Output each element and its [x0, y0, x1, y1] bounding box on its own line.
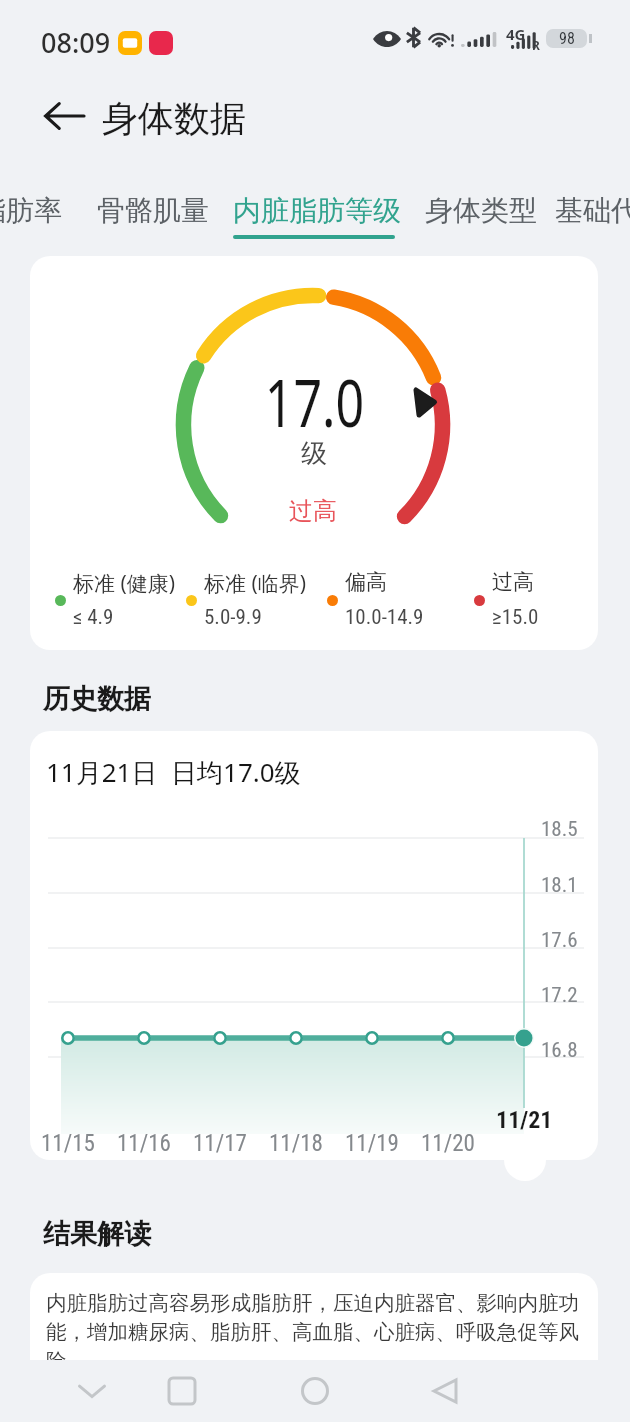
staticText: ≥15.0	[492, 605, 539, 630]
staticText: 5.0-9.9	[204, 605, 262, 630]
button[interactable]: Back	[30, 86, 98, 146]
staticText: 16.8	[541, 1038, 578, 1063]
staticText: 标准 (健康)	[73, 569, 176, 598]
staticText: 18.5	[541, 817, 578, 842]
staticText: 18.1	[541, 873, 578, 898]
staticText: 11/16	[117, 1130, 171, 1157]
staticText: 脂肪率	[0, 193, 62, 228]
staticText: 内脏脂肪等级	[233, 193, 401, 228]
button[interactable]: Hide	[62, 1360, 122, 1422]
staticText: 基础代谢	[555, 193, 630, 228]
staticText: 10.0-14.9	[345, 605, 424, 630]
staticText: 17.0	[265, 356, 364, 446]
staticText: 11/18	[269, 1130, 323, 1157]
staticText: 偏高	[345, 569, 387, 595]
staticText: 标准 (临界)	[204, 569, 307, 598]
staticText: 11/19	[345, 1130, 399, 1157]
staticText: ≤ 4.9	[73, 605, 114, 630]
button[interactable]: 内脏脂肪等级	[221, 186, 389, 242]
button[interactable]: 脂肪率	[0, 186, 50, 242]
staticText: 内脏脂肪过高容易形成脂肪肝，压迫内脏器官、影响内脏功能，增加糖尿病、脂肪肝、高血…	[46, 1290, 580, 1374]
staticText: 08:09	[41, 24, 111, 61]
button[interactable]: 基础代谢	[543, 186, 630, 242]
staticText: 11/21	[496, 1106, 553, 1134]
staticText: 级	[301, 437, 327, 470]
staticText: 结果解读	[43, 1217, 151, 1251]
staticText: 过高	[492, 569, 534, 595]
staticText: 98	[559, 29, 575, 48]
button[interactable]: 骨骼肌量	[85, 186, 197, 242]
staticText: 骨骼肌量	[97, 193, 209, 228]
staticText: 17.6	[541, 928, 578, 953]
staticText: 11/20	[421, 1130, 475, 1157]
button[interactable]: 身体类型	[413, 186, 525, 242]
staticText: R	[532, 37, 540, 53]
staticText: 过高	[289, 496, 337, 526]
button[interactable]: Add record	[504, 1139, 546, 1181]
staticText: 身体数据	[102, 96, 246, 141]
staticText: 4G	[506, 24, 526, 44]
staticText: 17.2	[541, 983, 578, 1008]
staticText: 身体类型	[425, 193, 537, 228]
staticText: 11/17	[193, 1130, 247, 1157]
staticText: 11月21日 日均17.0级	[46, 754, 301, 790]
button[interactable]: Home	[285, 1360, 345, 1422]
staticText: 历史数据	[43, 682, 151, 716]
button[interactable]: Back	[415, 1360, 475, 1422]
staticText: 11/15	[41, 1130, 95, 1157]
button[interactable]: Recent apps	[152, 1360, 212, 1422]
